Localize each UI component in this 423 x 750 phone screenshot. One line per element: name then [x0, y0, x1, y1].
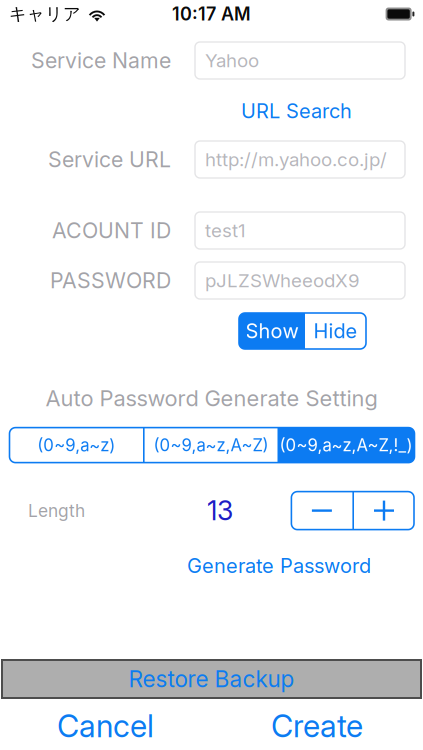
staticText: Service Name [31, 48, 171, 73]
button[interactable]: Generate Password [187, 555, 371, 577]
staticText: Hide [313, 319, 357, 343]
staticText: pJLZSWheeodX9 [205, 269, 360, 292]
staticText: (0~9,a~z) [37, 435, 115, 455]
button[interactable]: Show [239, 313, 305, 349]
button[interactable]: Increase length [354, 492, 414, 530]
staticText: Show [245, 319, 298, 343]
button[interactable]: Hide [305, 313, 366, 349]
button[interactable]: Decrease length [291, 492, 352, 530]
staticText: Generate Password [187, 553, 371, 578]
staticText: PASSWORD [50, 268, 171, 293]
button[interactable]: Cancel [0, 710, 211, 742]
button[interactable]: (0~9,a~z,A~Z) [145, 428, 277, 463]
staticText: http://m.yahoo.co.jp/ [205, 148, 387, 171]
staticText: (0~9,a~z,A~Z) [154, 435, 269, 455]
staticText: Auto Password Generate Setting [45, 385, 377, 412]
staticText: (0~9,a~z,A~Z,!_) [279, 435, 412, 455]
staticText: 13 [207, 494, 233, 527]
staticText: URL Search [241, 99, 352, 123]
staticText: Service URL [48, 147, 171, 172]
button[interactable]: (0~9,a~z,A~Z,!_) [277, 428, 414, 463]
button[interactable]: Restore Backup [2, 660, 421, 698]
button[interactable]: Create [211, 710, 423, 742]
button[interactable]: URL Search [241, 100, 352, 122]
staticText: Restore Backup [128, 665, 294, 693]
staticText: キャリア [9, 3, 81, 25]
staticText: test1 [205, 219, 246, 242]
staticText: Create [271, 707, 363, 744]
staticText: 10:17 AM [172, 3, 251, 25]
staticText: Yahoo [205, 49, 259, 72]
staticText: Length [28, 500, 85, 521]
staticText: ACOUNT ID [52, 218, 171, 243]
staticText: Cancel [57, 707, 154, 744]
button[interactable]: (0~9,a~z) [9, 428, 143, 463]
